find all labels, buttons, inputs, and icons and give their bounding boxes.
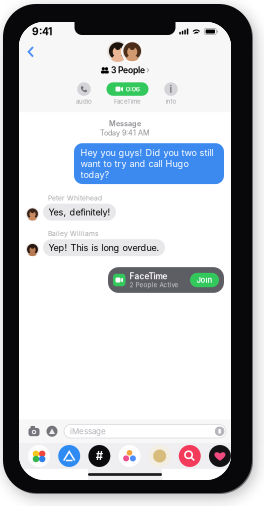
button[interactable]: FaceTime: [108, 267, 224, 293]
button[interactable]: Camera: [28, 425, 40, 437]
button[interactable]: Audio call: [66, 82, 102, 105]
staticText: #: [96, 449, 103, 463]
staticText: Yep! This is long overdue.: [48, 242, 159, 253]
staticText: Join: [196, 275, 212, 285]
staticText: i: [169, 83, 172, 95]
button[interactable]: Digital Touch: [205, 445, 235, 467]
staticText: Message: [109, 119, 141, 128]
button[interactable]: Info: [153, 82, 189, 105]
button[interactable]: Apple Cash: [145, 445, 175, 467]
button[interactable]: Music: [114, 445, 144, 467]
staticText: FaceTime: [114, 98, 141, 105]
staticText: 9:41: [32, 25, 52, 38]
staticText: 3 People: [111, 65, 145, 75]
staticText: Hey you guys! Did you two still want to …: [80, 147, 213, 180]
staticText: 0:06: [126, 85, 140, 93]
staticText: 2 People Active: [129, 281, 178, 289]
staticText: Peter Whitehead: [48, 194, 102, 202]
staticText: audio: [76, 98, 92, 105]
button[interactable]: FaceTime: [106, 82, 148, 105]
button[interactable]: Back: [23, 42, 38, 62]
staticText: Yes, definitely!: [48, 207, 110, 218]
button[interactable]: Photos: [24, 445, 54, 467]
button[interactable]: App Store: [54, 445, 84, 467]
staticText: Today 9:41 AM: [100, 128, 150, 137]
button[interactable]: Apps: [46, 425, 58, 437]
staticText: FaceTime: [129, 271, 167, 281]
staticText: iMessage: [70, 426, 106, 436]
staticText: info: [165, 98, 176, 105]
staticText: Bailey Williams: [48, 230, 99, 238]
button[interactable]: Memoji Stickers: [84, 445, 114, 467]
button[interactable]: Apple Music: [175, 445, 205, 467]
